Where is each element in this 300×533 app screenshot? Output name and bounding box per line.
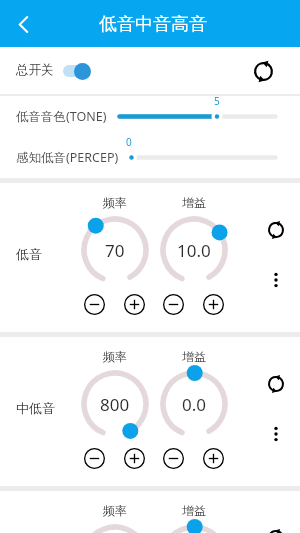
button[interactable]: 总开关 <box>16 62 92 80</box>
button[interactable]: Decrease <box>83 293 105 315</box>
button[interactable]: Increase <box>123 293 145 315</box>
button[interactable]: Increase <box>202 293 224 315</box>
staticText: 总开关 <box>16 62 54 78</box>
staticText: 增益 <box>182 503 206 518</box>
button[interactable]: Reset band <box>262 524 290 533</box>
staticText: 低音中音高音 <box>99 13 207 36</box>
button[interactable]: Decrease <box>162 447 184 469</box>
staticText: 频率 <box>103 195 127 210</box>
staticText: 频率 <box>103 349 127 364</box>
button[interactable]: More options <box>262 420 290 448</box>
button[interactable]: Decrease <box>162 293 184 315</box>
button[interactable]: Increase <box>123 447 145 469</box>
button[interactable]: Back <box>0 1 46 47</box>
button[interactable]: 感知低音(PERCEP) <box>0 137 300 178</box>
button[interactable]: Increase <box>202 447 224 469</box>
staticText: 70 <box>105 239 125 262</box>
button[interactable]: Reset band <box>262 216 290 244</box>
staticText: 增益 <box>182 349 206 364</box>
button[interactable]: 低音音色(TONE) <box>0 96 300 137</box>
staticText: 中低音 <box>16 400 55 416</box>
staticText: 0.0 <box>182 393 207 416</box>
staticText: 800 <box>100 393 130 416</box>
button[interactable]: Reset all <box>249 57 277 85</box>
staticText: 10.0 <box>177 239 211 262</box>
staticText: 增益 <box>182 195 206 210</box>
staticText: 低音音色(TONE) <box>16 108 107 125</box>
button[interactable]: Decrease <box>83 447 105 469</box>
staticText: 频率 <box>103 503 127 518</box>
staticText: 0 <box>126 135 132 149</box>
button[interactable]: Reset band <box>262 370 290 398</box>
staticText: 5 <box>214 94 220 108</box>
button[interactable]: More options <box>262 266 290 294</box>
staticText: 低音 <box>16 246 42 262</box>
staticText: 感知低音(PERCEP) <box>16 149 119 166</box>
